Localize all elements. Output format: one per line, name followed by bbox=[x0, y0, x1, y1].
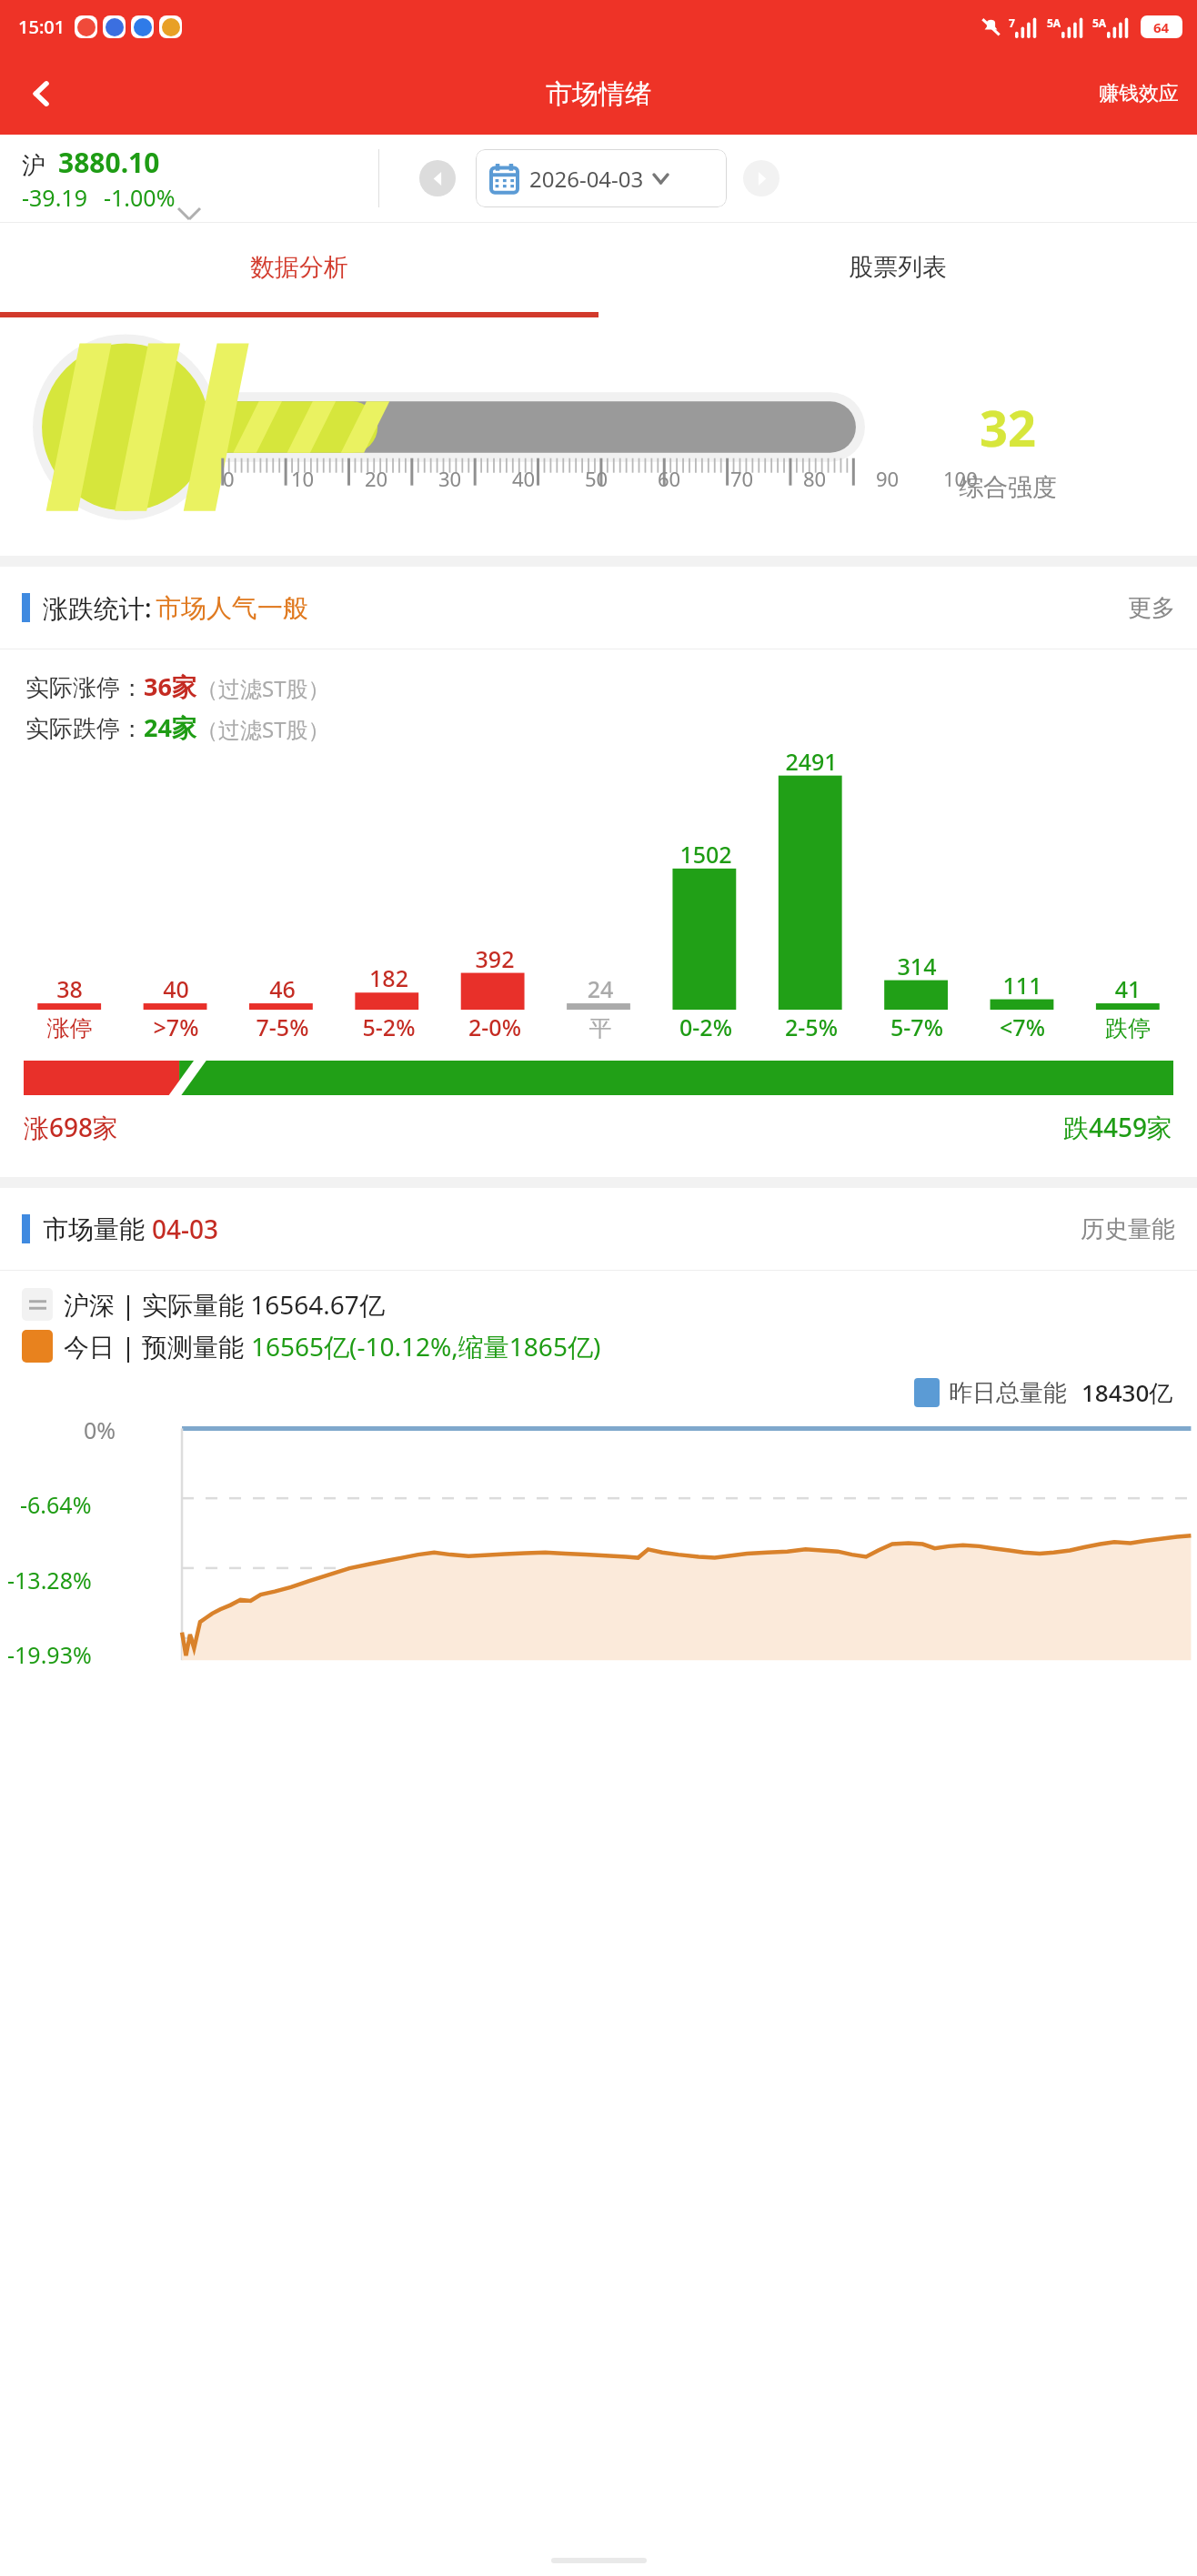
staticText: 涨698家 bbox=[24, 1110, 119, 1144]
staticText: 数据分析 bbox=[250, 252, 348, 283]
staticText: 涨跌统计: bbox=[43, 590, 152, 625]
button[interactable]: 涨跌统计: bbox=[0, 567, 1197, 649]
staticText: 今日 | 预测量能 bbox=[64, 1329, 251, 1363]
staticText: 16565亿(-10.12%,缩量1865亿) bbox=[251, 1329, 601, 1363]
staticText: 10 bbox=[291, 465, 315, 492]
button[interactable]: 市场量能 bbox=[0, 1188, 1197, 1270]
staticText: 04-03 bbox=[152, 1212, 219, 1246]
staticText: 40 bbox=[123, 973, 229, 1004]
staticText: 沪 bbox=[22, 151, 45, 181]
staticText: 平 bbox=[548, 1014, 653, 1042]
staticText: 392 bbox=[442, 943, 548, 974]
staticText: （过滤ST股） bbox=[196, 673, 330, 703]
staticText: 46 bbox=[229, 973, 336, 1004]
staticText: 24家 bbox=[144, 710, 196, 744]
staticText: 0 bbox=[223, 465, 235, 492]
staticText: 90 bbox=[876, 465, 900, 492]
staticText: 2-0% bbox=[442, 1011, 548, 1042]
staticText: 100 bbox=[943, 465, 978, 492]
staticText: <7% bbox=[970, 1011, 1075, 1042]
button[interactable]: 2026-04-03 bbox=[476, 149, 727, 207]
staticText: 18430亿 bbox=[1081, 1376, 1173, 1409]
button[interactable]: Previous day bbox=[419, 160, 456, 196]
staticText: 0% bbox=[84, 1414, 116, 1445]
button[interactable]: 赚钱效应 bbox=[1081, 53, 1197, 135]
staticText: 涨停 bbox=[16, 1014, 123, 1042]
staticText: 5A bbox=[1092, 15, 1107, 30]
staticText: 15:01 bbox=[18, 15, 65, 39]
staticText: 实际涨停： bbox=[25, 673, 144, 703]
staticText: 市场情绪 bbox=[546, 77, 651, 111]
staticText: 跌停 bbox=[1075, 1014, 1181, 1042]
staticText: 182 bbox=[336, 962, 442, 993]
staticText: 36家 bbox=[144, 669, 196, 703]
staticText: 30 bbox=[438, 465, 462, 492]
staticText: 综合强度 bbox=[959, 472, 1057, 503]
staticText: 沪深 | 实际量能 16564.67亿 bbox=[64, 1287, 385, 1322]
staticText: 60 bbox=[658, 465, 681, 492]
staticText: 64 bbox=[1153, 18, 1170, 36]
staticText: 40 bbox=[512, 465, 536, 492]
staticText: -6.64% bbox=[20, 1489, 92, 1520]
staticText: 0-2% bbox=[653, 1011, 759, 1042]
staticText: 41 bbox=[1075, 973, 1181, 1004]
staticText: 2-5% bbox=[759, 1011, 864, 1042]
button[interactable]: Back bbox=[0, 53, 84, 135]
staticText: 5A bbox=[1047, 15, 1061, 30]
staticText: （过滤ST股） bbox=[196, 714, 330, 744]
staticText: 111 bbox=[970, 970, 1075, 1001]
staticText: 2491 bbox=[759, 746, 864, 777]
button[interactable]: 数据分析 bbox=[0, 223, 598, 312]
staticText: 更多 bbox=[1128, 593, 1175, 623]
staticText: 市场量能 bbox=[43, 1213, 145, 1245]
staticText: 实际跌停： bbox=[25, 714, 144, 744]
staticText: 7 bbox=[1009, 15, 1015, 30]
staticText: 历史量能 bbox=[1081, 1214, 1175, 1244]
button[interactable]: 股票列表 bbox=[598, 223, 1197, 312]
staticText: 20 bbox=[365, 465, 388, 492]
staticText: 股票列表 bbox=[849, 252, 947, 283]
staticText: 2026-04-03 bbox=[529, 164, 644, 194]
staticText: 1502 bbox=[653, 839, 759, 870]
staticText: 3880.10 bbox=[58, 144, 160, 181]
staticText: 24 bbox=[548, 973, 653, 1004]
staticText: 50 bbox=[585, 465, 609, 492]
staticText: 314 bbox=[864, 951, 970, 981]
button[interactable]: Next day bbox=[743, 160, 780, 196]
staticText: 7-5% bbox=[229, 1011, 336, 1042]
staticText: 80 bbox=[803, 465, 827, 492]
staticText: 赚钱效应 bbox=[1099, 81, 1179, 106]
staticText: >7% bbox=[123, 1011, 229, 1042]
staticText: 5-7% bbox=[864, 1011, 970, 1042]
staticText: -13.28% bbox=[7, 1565, 92, 1595]
staticText: -19.93% bbox=[7, 1639, 92, 1669]
staticText: 32 bbox=[980, 394, 1036, 461]
staticText: -1.00% bbox=[104, 182, 176, 213]
staticText: -39.19 bbox=[22, 182, 87, 213]
staticText: 38 bbox=[16, 973, 123, 1004]
staticText: 跌4459家 bbox=[1063, 1110, 1173, 1144]
staticText: 市场人气一般 bbox=[156, 592, 308, 624]
staticText: 70 bbox=[730, 465, 754, 492]
staticText: 昨日总量能 bbox=[949, 1378, 1067, 1408]
staticText: 5-2% bbox=[336, 1011, 442, 1042]
